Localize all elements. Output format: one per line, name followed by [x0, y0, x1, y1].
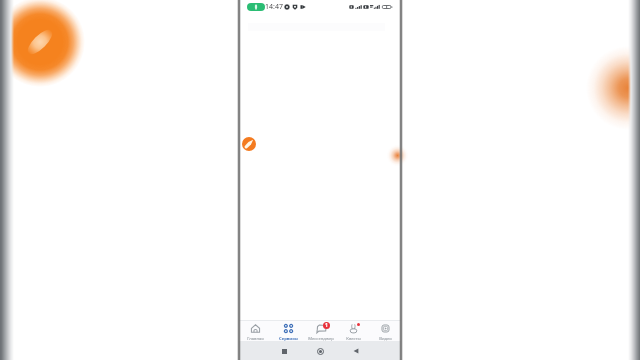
- button[interactable]: Квесты: [337, 320, 369, 341]
- staticText: 14:47: [265, 2, 283, 12]
- staticText: Видео: [379, 336, 392, 341]
- button[interactable]: Recents: [277, 344, 291, 358]
- staticText: 1: [325, 322, 328, 329]
- button[interactable]: Главная: [239, 320, 272, 341]
- button[interactable]: Home: [313, 344, 327, 358]
- button[interactable]: Сервисы: [272, 320, 305, 341]
- staticText: Главная: [247, 336, 264, 341]
- button[interactable]: Compass: [242, 137, 256, 151]
- button[interactable]: Видео: [369, 320, 401, 341]
- staticText: Мессенджер: [308, 336, 334, 341]
- button[interactable]: Back: [349, 344, 363, 358]
- staticText: Квесты: [346, 336, 361, 341]
- button[interactable]: 1: [305, 320, 337, 341]
- staticText: Сервисы: [279, 336, 298, 341]
